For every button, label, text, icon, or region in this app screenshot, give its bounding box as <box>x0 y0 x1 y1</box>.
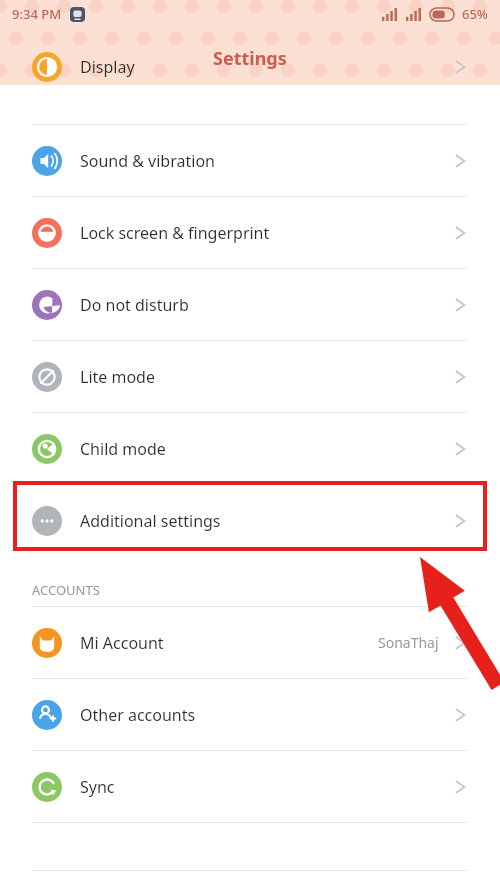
button[interactable]: Mi Account <box>0 607 500 678</box>
staticText: ACCOUNTS <box>32 581 100 599</box>
staticText: Sync <box>80 776 115 798</box>
staticText: Lock screen & fingerprint <box>80 222 270 244</box>
staticText: Lite mode <box>80 366 155 388</box>
button[interactable]: Do not disturb <box>0 269 500 340</box>
button[interactable]: Sync <box>0 751 500 822</box>
button[interactable]: Additional settings <box>0 485 500 556</box>
staticText: 65% <box>462 5 488 23</box>
button[interactable]: Other accounts <box>0 679 500 750</box>
button[interactable]: Lock screen & fingerprint <box>0 197 500 268</box>
staticText: SonaThaj <box>378 633 439 652</box>
staticText: Sound & vibration <box>80 150 215 172</box>
staticText: Additional settings <box>80 510 221 532</box>
staticText: Other accounts <box>80 704 196 726</box>
button[interactable]: Child mode <box>0 413 500 484</box>
button[interactable]: Sound & vibration <box>0 125 500 196</box>
staticText: Settings <box>213 46 287 71</box>
staticText: Do not disturb <box>80 294 189 316</box>
staticText: 9:34 PM <box>12 5 62 23</box>
staticText: Mi Account <box>80 632 164 654</box>
button[interactable]: Lite mode <box>0 341 500 412</box>
staticText: Display <box>80 56 135 78</box>
staticText: Child mode <box>80 438 166 460</box>
